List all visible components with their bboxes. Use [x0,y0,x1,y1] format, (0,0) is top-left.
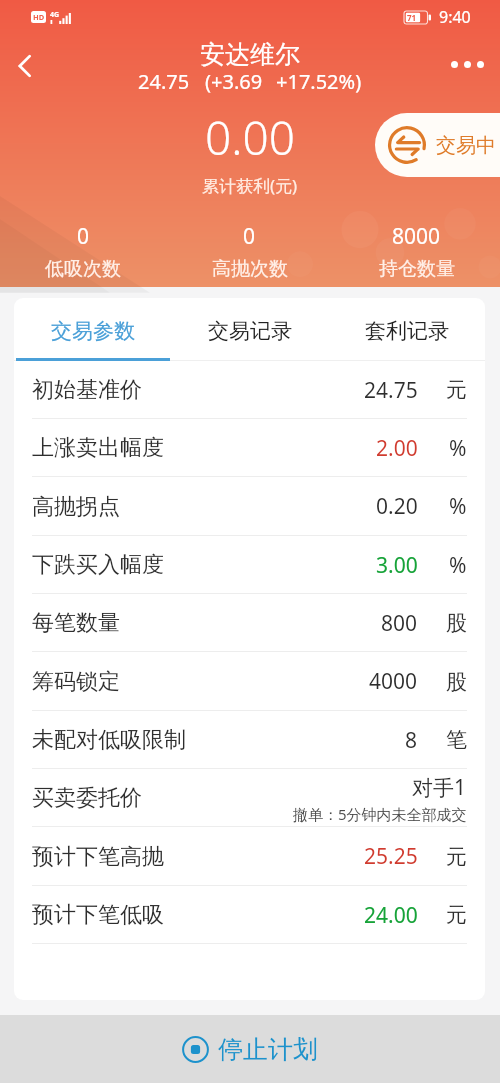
staticText: 71 [407,12,417,23]
staticText: 交易中 [436,133,496,158]
staticText: 0 [77,222,90,251]
button[interactable]: 买卖委托价 [14,769,485,827]
button[interactable]: 交易记录 [171,298,328,361]
staticText: 800 [381,609,418,638]
staticText: 停止计划 [218,1034,318,1065]
staticText: 3.00 [376,551,418,580]
button[interactable]: 套利记录 [328,298,485,361]
staticText: 笔 [446,727,467,753]
staticText: 累计获利(元) [202,174,298,197]
staticText: 9:40 [439,6,471,28]
button[interactable]: 筹码锁定 [14,652,485,711]
staticText: 撤单：5分钟内未全部成交 [293,804,467,824]
staticText: 下跌买入幅度 [32,551,164,579]
staticText: 8000 [392,222,441,251]
button[interactable]: 未配对低吸限制 [14,711,485,769]
staticText: 25.25 [364,842,418,871]
staticText: 交易参数 [51,318,135,344]
button[interactable]: Back [2,43,48,89]
staticText: 24.00 [364,901,418,930]
staticText: 交易记录 [208,318,292,344]
staticText: 元 [446,844,467,870]
staticText: 0.20 [376,492,418,521]
staticText: +17.52%) [276,68,362,95]
button[interactable]: 交易参数 [14,298,171,361]
staticText: 8 [405,726,418,755]
staticText: 每笔数量 [32,609,120,637]
staticText: 持仓数量 [379,257,455,281]
staticText: % [449,551,467,580]
staticText: 套利记录 [365,318,449,344]
button[interactable]: 预计下笔低吸 [14,886,485,944]
staticText: 股 [446,669,467,695]
staticText: 买卖委托价 [32,784,142,812]
staticText: 低吸次数 [45,257,121,281]
button[interactable]: 下跌买入幅度 [14,536,485,594]
button[interactable]: 高抛拐点 [14,477,485,536]
button[interactable]: 每笔数量 [14,594,485,652]
staticText: 24.75 [138,68,190,95]
staticText: 预计下笔高抛 [32,843,164,871]
staticText: 对手1 [412,773,467,802]
staticText: % [449,492,467,521]
staticText: 初始基准价 [32,376,142,404]
button[interactable]: More options [445,46,489,82]
button[interactable]: 交易中 [375,113,500,177]
staticText: 高抛拐点 [32,493,120,521]
staticText: % [449,434,467,463]
staticText: 元 [446,902,467,928]
staticText: 筹码锁定 [32,668,120,696]
staticText: 4G [50,10,60,20]
staticText: 未配对低吸限制 [32,726,186,754]
button[interactable]: 预计下笔高抛 [14,827,485,886]
staticText: 高抛次数 [212,257,288,281]
staticText: 4000 [369,667,418,696]
button[interactable]: 停止计划 [0,1015,500,1083]
staticText: 股 [446,610,467,636]
button[interactable]: 初始基准价 [14,361,485,419]
staticText: 0 [243,222,256,251]
staticText: 预计下笔低吸 [32,901,164,929]
staticText: 安达维尔 [200,39,300,70]
staticText: (+3.69 [205,68,263,95]
button[interactable]: 上涨卖出幅度 [14,419,485,477]
staticText: 2.00 [376,434,418,463]
staticText: 0.00 [205,106,296,169]
staticText: HD [33,12,45,22]
staticText: 24.75 [364,376,418,405]
staticText: 元 [446,377,467,403]
staticText: 上涨卖出幅度 [32,434,164,462]
